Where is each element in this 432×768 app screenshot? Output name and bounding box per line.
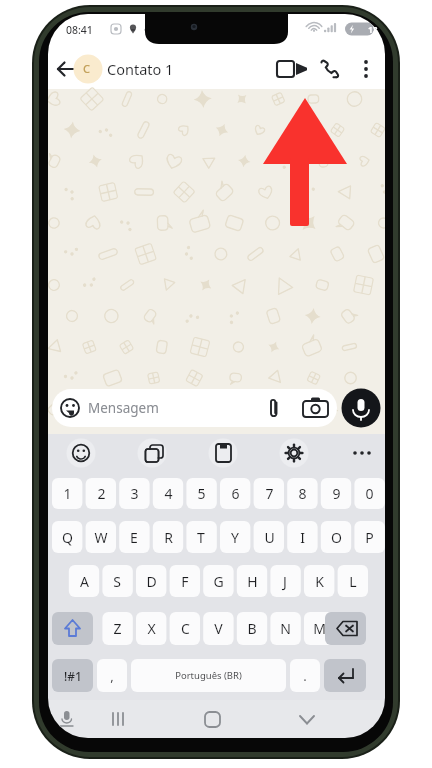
button[interactable] [153,521,183,553]
button[interactable] [102,612,132,645]
button[interactable] [270,565,300,597]
staticText: W [94,528,108,547]
button[interactable] [186,478,216,509]
staticText: 13 [368,24,378,36]
button[interactable]: Recent apps [103,704,133,734]
staticText: 2 [97,484,106,503]
button[interactable] [203,565,233,597]
button[interactable] [119,521,149,553]
staticText: 3 [130,484,139,503]
button[interactable] [153,478,183,509]
button[interactable] [52,521,82,553]
staticText: 1 [63,484,72,503]
button[interactable] [321,521,351,553]
button[interactable] [52,389,337,427]
staticText: B [247,619,257,638]
button[interactable] [186,521,216,553]
staticText: Mensagem [88,399,159,417]
button[interactable]: More [345,438,379,468]
staticText: H [247,572,258,591]
staticText: Contato 1 [107,59,174,79]
staticText: M [313,619,326,638]
button[interactable]: Translate [135,438,169,468]
button[interactable]: Voice message [341,388,381,428]
button[interactable] [170,612,200,645]
staticText: K [315,572,324,591]
button[interactable]: Camera [296,389,330,427]
staticText: L [349,572,357,591]
button[interactable] [69,565,99,597]
staticText: !#1 [64,668,82,684]
staticText: A [80,572,89,591]
button[interactable]: Keyboard settings [277,438,311,468]
button[interactable] [237,565,267,597]
staticText: O [331,528,342,547]
staticText: X [147,619,156,638]
staticText: 08:41 [66,23,93,37]
staticText: 4 [164,484,173,503]
button[interactable] [321,478,351,509]
staticText: Português (BR) [175,669,242,682]
button[interactable] [270,612,300,645]
staticText: T [197,528,205,547]
button[interactable] [102,565,132,597]
button[interactable] [290,659,320,692]
button[interactable] [287,521,317,553]
staticText: , [110,667,114,685]
staticText: 6 [231,484,240,503]
button[interactable] [203,612,233,645]
button[interactable]: Clipboard [206,438,240,468]
button[interactable] [354,478,384,509]
button[interactable] [304,612,334,645]
staticText: 7 [265,484,274,503]
button[interactable] [131,659,286,692]
staticText: I [300,528,305,547]
button[interactable] [119,478,149,509]
button[interactable] [220,478,250,509]
button[interactable]: Home [198,704,228,734]
staticText: J [283,572,287,591]
button[interactable] [254,521,284,553]
button[interactable] [136,565,166,597]
staticText: 0 [365,484,374,503]
staticText: 5 [197,484,206,503]
staticText: Q [62,528,73,547]
button[interactable]: Enter [324,659,365,692]
button[interactable] [86,478,116,509]
button[interactable] [170,565,200,597]
button[interactable] [354,521,384,553]
button[interactable] [72,52,222,86]
staticText: D [146,572,157,591]
button[interactable]: Shift [52,612,93,645]
button[interactable]: Voice input [52,704,82,734]
button[interactable]: Backspace [325,612,366,645]
staticText: R [164,528,173,547]
button[interactable] [136,612,166,645]
button[interactable]: Video call [270,52,304,86]
button[interactable] [287,478,317,509]
button[interactable]: Attach [256,389,290,427]
staticText: G [213,572,224,591]
staticText: P [365,528,374,547]
button[interactable] [220,521,250,553]
staticText: C [181,619,190,638]
button[interactable] [338,565,368,597]
button[interactable]: Voice call [313,52,347,86]
button[interactable] [52,659,93,692]
button[interactable]: Hide keyboard [293,704,323,734]
staticText: N [280,619,291,638]
staticText: V [214,619,223,638]
button[interactable]: Back [50,52,80,86]
button[interactable]: Emoji [64,438,98,468]
button[interactable] [237,612,267,645]
staticText: . [303,667,307,685]
staticText: C [83,61,90,76]
button[interactable] [254,478,284,509]
staticText: Z [113,619,122,638]
button[interactable] [97,659,127,692]
button[interactable] [304,565,334,597]
staticText: E [130,528,138,547]
button[interactable]: More options [352,52,382,86]
button[interactable] [52,478,82,509]
button[interactable] [86,521,116,553]
